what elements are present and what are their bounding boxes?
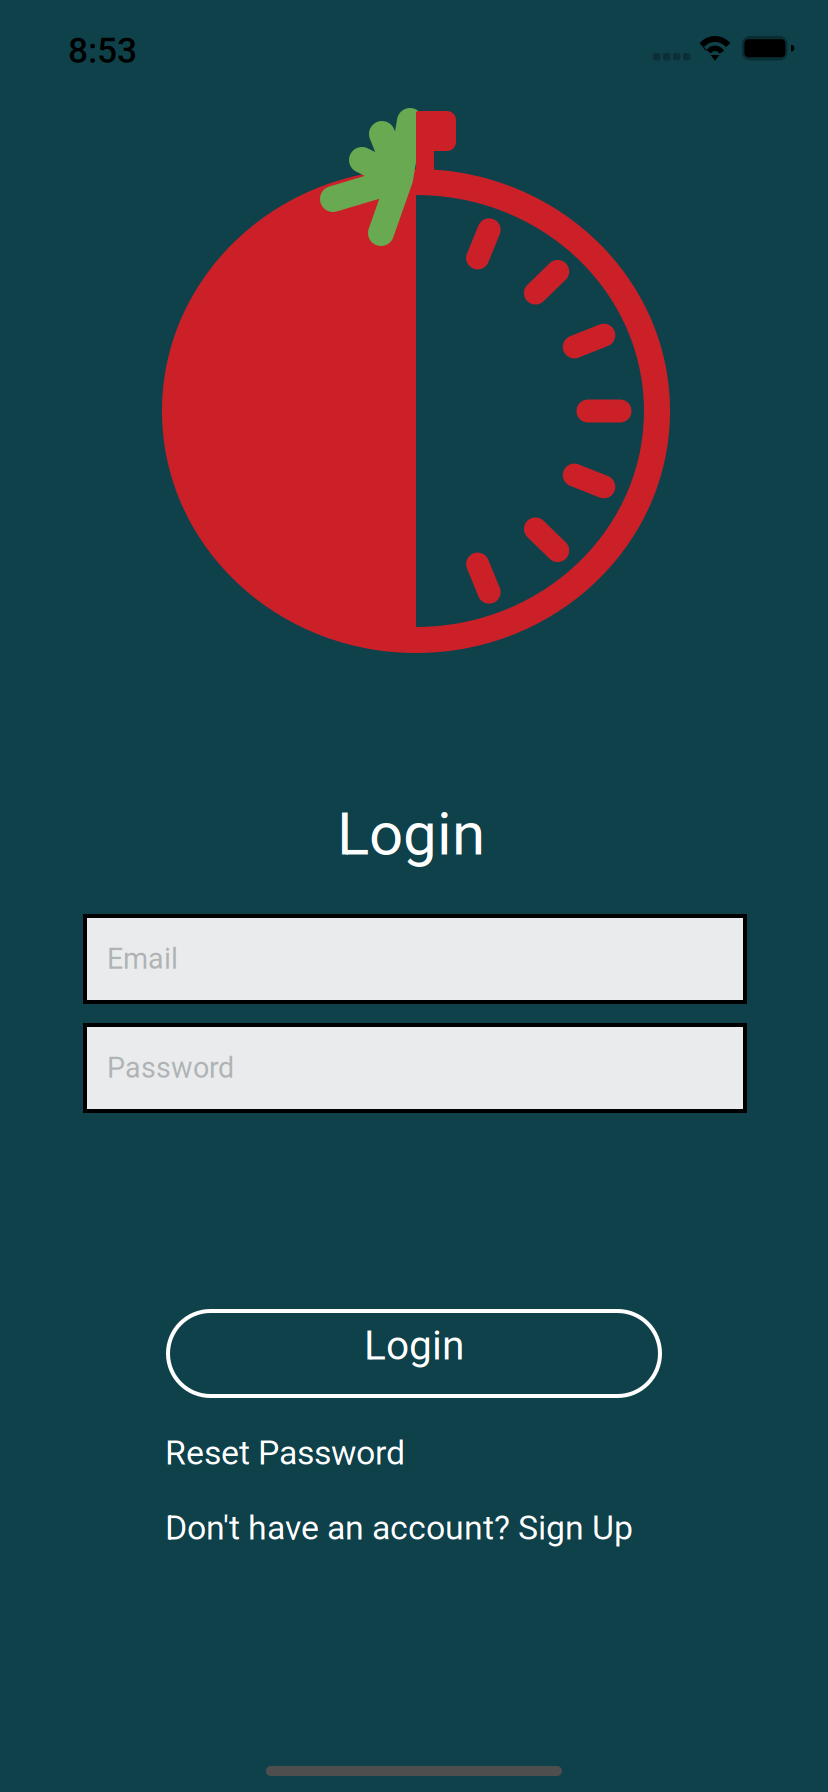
button[interactable]: Password	[83, 1023, 747, 1113]
staticText: Password	[107, 1051, 234, 1085]
staticText: 8:53	[68, 30, 137, 71]
button[interactable]: Login	[166, 1309, 662, 1398]
staticText: Don't have an account? Sign Up	[165, 1508, 633, 1548]
button[interactable]: Email	[83, 914, 747, 1004]
staticText: Login	[364, 1322, 464, 1369]
staticText: Login	[337, 799, 485, 869]
button[interactable]: Reset Password	[165, 1433, 665, 1473]
button[interactable]: Don't have an account? Sign Up	[165, 1508, 685, 1548]
staticText: Email	[107, 942, 178, 976]
staticText: Reset Password	[165, 1433, 405, 1473]
